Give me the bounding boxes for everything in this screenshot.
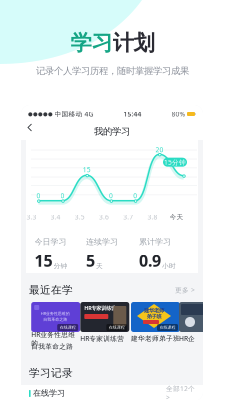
staticText: 全部12个 > [166, 384, 195, 400]
staticText: 0 [36, 191, 40, 200]
staticText: 弟子班 [146, 313, 161, 320]
staticText: 在线学习 [33, 388, 65, 398]
staticText: 3.4 [51, 213, 61, 221]
staticText: 小时 [162, 262, 176, 270]
button[interactable]: 更多 > [171, 281, 195, 299]
button[interactable]: HR业务性思维的 [31, 302, 80, 354]
staticText: 80% [171, 110, 185, 118]
staticText: 15 [34, 250, 52, 271]
staticText: 累计学习 [139, 237, 171, 247]
staticText: 15分钟 [164, 158, 186, 167]
staticText: 在线课程 [109, 325, 125, 330]
staticText: 连续学习 [86, 237, 118, 247]
staticText: 学习 [70, 30, 112, 56]
staticText: 0.9 [139, 250, 161, 271]
staticText: 3.5 [75, 213, 85, 221]
staticText: HR企 [179, 334, 195, 343]
staticText: 15 [83, 165, 91, 174]
staticText: 今天 [170, 213, 184, 221]
button[interactable]: HR企 [179, 302, 225, 354]
staticText: 0 [61, 191, 65, 200]
staticText: 15:44 [123, 110, 141, 118]
staticText: 学习记录 [29, 366, 73, 379]
staticText: HR专家训练营 [80, 334, 124, 343]
staticText: 自我革命之路 [31, 342, 73, 351]
staticText: 计划 [112, 30, 154, 56]
staticText: 天 [96, 262, 103, 270]
staticText: 3.3 [26, 213, 36, 221]
button[interactable]: Back [27, 123, 39, 140]
staticText: 5 [86, 250, 95, 271]
staticText: HR业务性思维的 [41, 311, 70, 316]
staticText: 在线课程 [159, 325, 175, 330]
button[interactable]: 建华老师 [131, 302, 180, 354]
staticText: 建华老师弟子班 [131, 334, 180, 343]
staticText: 更多 > [175, 286, 195, 294]
staticText: 我的学习 [94, 126, 130, 137]
staticText: 3.8 [147, 213, 157, 221]
staticText: 中国移动 4G [54, 110, 93, 118]
staticText: 3.6 [99, 213, 109, 221]
staticText: 0 [133, 191, 137, 200]
staticText: HR业务性思维的 [31, 330, 75, 347]
staticText: 0 [109, 191, 113, 200]
staticText: 3.7 [123, 213, 133, 221]
button[interactable]: 全部12个 > [163, 386, 195, 400]
staticText: ●●●●● [28, 111, 53, 117]
staticText: 建华老师 [144, 307, 164, 314]
staticText: 记录个人学习历程，随时掌握学习成果 [36, 65, 189, 77]
staticText: 分钟 [53, 262, 67, 270]
staticText: 自我革命之路 [43, 317, 67, 322]
staticText: HR专家训练营 [84, 304, 116, 311]
staticText: 在线课程 [60, 325, 76, 330]
staticText: 20 [155, 145, 163, 154]
staticText: 最近在学 [29, 283, 73, 296]
staticText: 今日学习 [34, 237, 66, 247]
button[interactable]: HR专家训练营 [80, 302, 129, 354]
